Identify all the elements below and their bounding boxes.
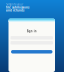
staticText: and refunds [6,9,24,12]
staticText: Sign in [27,29,37,33]
staticText: file submissions [6,6,29,9]
button[interactable] [8,50,55,53]
staticText: Simplify your [6,3,23,6]
